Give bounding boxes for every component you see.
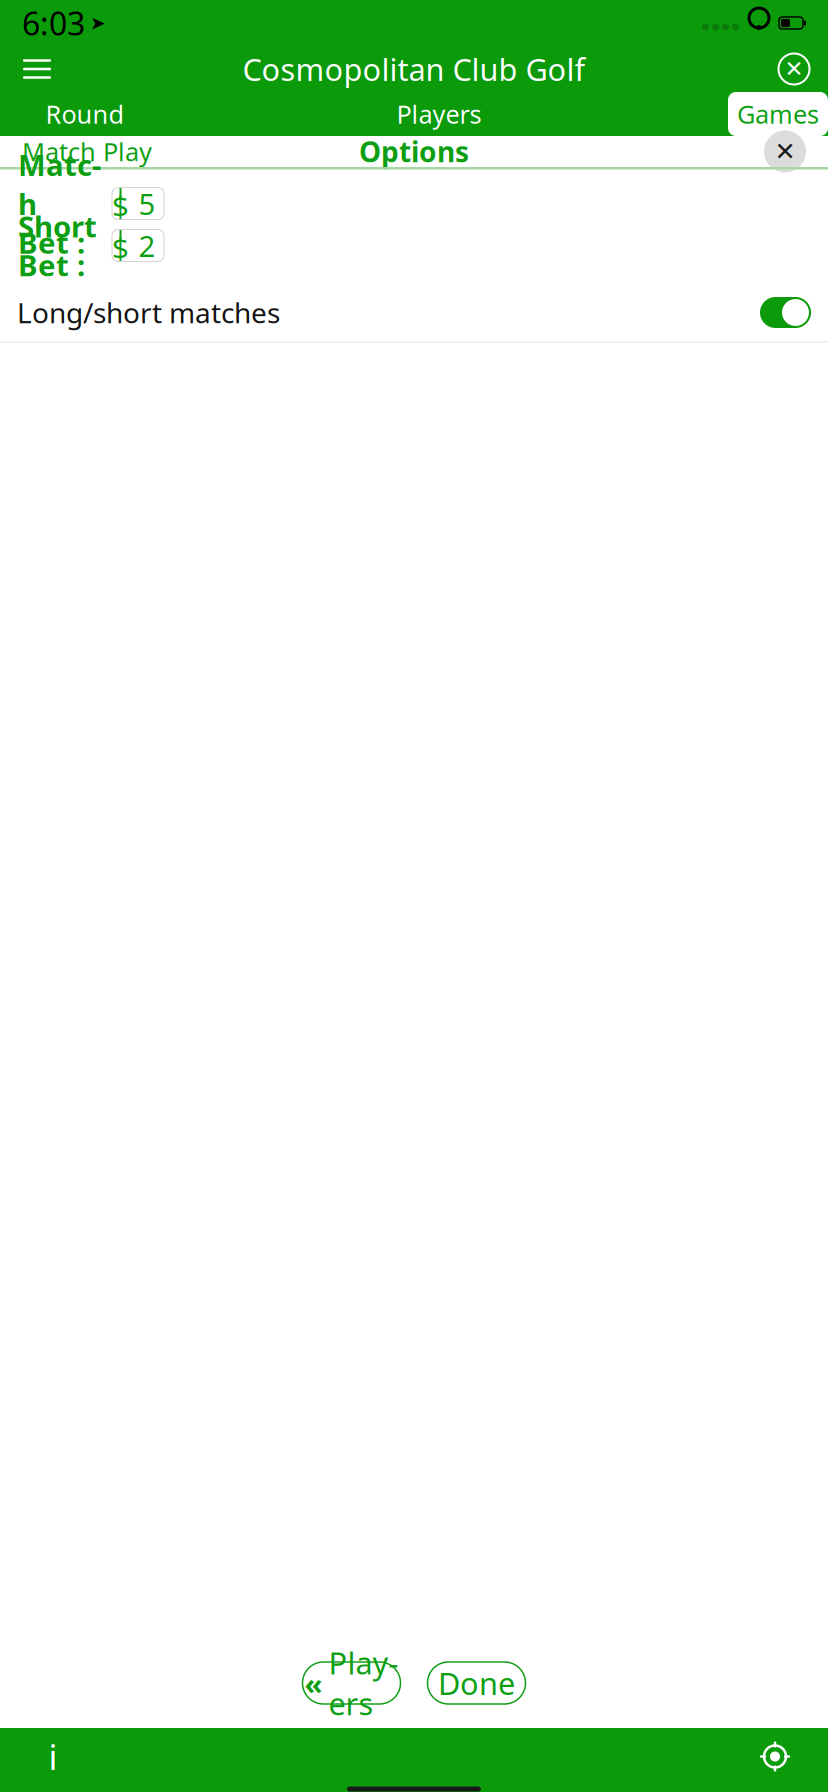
button[interactable]: Dismiss options	[764, 130, 806, 172]
staticText: Short Bet :	[18, 206, 97, 284]
staticText: Cosmopolitan Club Golf	[242, 49, 585, 89]
staticText: ✕	[774, 137, 795, 166]
staticText: $	[112, 228, 129, 267]
button[interactable]: Match Play	[18, 135, 156, 168]
staticText: 2	[138, 226, 155, 265]
button[interactable]: Players	[374, 92, 504, 136]
staticText: ✕	[784, 56, 803, 82]
button[interactable]: Close	[770, 47, 818, 91]
button[interactable]: Menu	[10, 47, 64, 91]
staticText: Done	[438, 1663, 515, 1703]
staticText: $	[112, 186, 129, 225]
staticText: ➤	[90, 12, 106, 34]
button[interactable]: Short Bet : amount	[112, 229, 164, 261]
staticText: «	[304, 1663, 322, 1702]
button[interactable]: Games	[728, 92, 828, 136]
staticText: Match Bet :	[18, 145, 101, 262]
staticText: 5	[138, 184, 155, 223]
button[interactable]: Round	[20, 92, 150, 136]
staticText: Options	[359, 133, 469, 170]
staticText: Players	[328, 1642, 398, 1724]
staticText: Games	[737, 97, 819, 131]
staticText: i	[48, 1733, 57, 1779]
button[interactable]: Match Bet : amount	[112, 187, 164, 219]
staticText: Match Play	[22, 135, 152, 168]
staticText: Round	[45, 97, 124, 131]
button[interactable]: Information	[25, 1734, 81, 1778]
button[interactable]: Long/short matches	[760, 297, 811, 328]
button[interactable]: Done	[427, 1662, 525, 1704]
staticText: Long/short matches	[17, 294, 280, 331]
button[interactable]: «	[302, 1662, 400, 1704]
staticText: Players	[396, 97, 481, 131]
staticText: 6:03	[22, 2, 85, 44]
button[interactable]: Locate	[747, 1734, 803, 1778]
